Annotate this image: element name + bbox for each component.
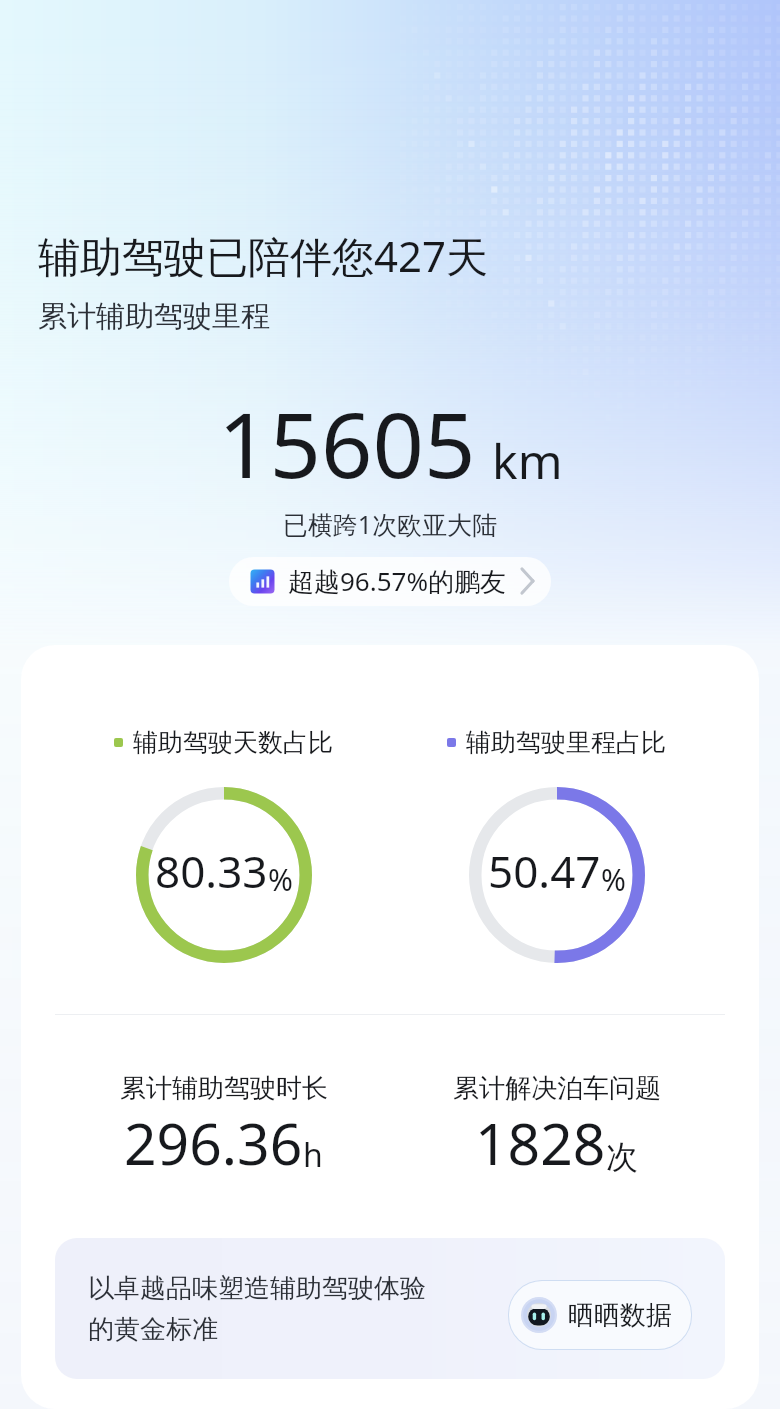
staticText: 辅助驾驶天数占比	[133, 727, 333, 758]
button[interactable]: 超越96.57%的鹏友	[229, 557, 551, 606]
staticText: 晒晒数据	[568, 1299, 672, 1332]
staticText: 累计辅助驾驶里程	[38, 298, 270, 335]
button[interactable]: 晒晒数据	[509, 1281, 691, 1349]
staticText: 辅助驾驶已陪伴您427天	[38, 227, 489, 284]
staticText: 超越96.57%的鹏友	[288, 563, 507, 599]
staticText: 次	[606, 1137, 638, 1177]
staticText: km	[492, 428, 563, 493]
staticText: 296.36	[124, 1104, 303, 1182]
staticText: 累计辅助驾驶时长	[120, 1072, 328, 1105]
staticText: %	[601, 859, 626, 900]
staticText: 15605	[218, 382, 476, 505]
staticText: 辅助驾驶里程占比	[466, 727, 666, 758]
staticText: 1828	[475, 1104, 606, 1182]
other: More	[521, 568, 534, 594]
staticText: 80.33	[155, 841, 268, 901]
staticText: h	[303, 1133, 323, 1177]
staticText: 50.47	[488, 841, 601, 901]
staticText: 已横跨1次欧亚大陆	[0, 507, 780, 541]
staticText: 累计解决泊车问题	[453, 1072, 661, 1105]
staticText: %	[268, 859, 293, 900]
staticText: 以卓越品味塑造辅助驾驶体验 的黄金标准	[88, 1272, 426, 1345]
